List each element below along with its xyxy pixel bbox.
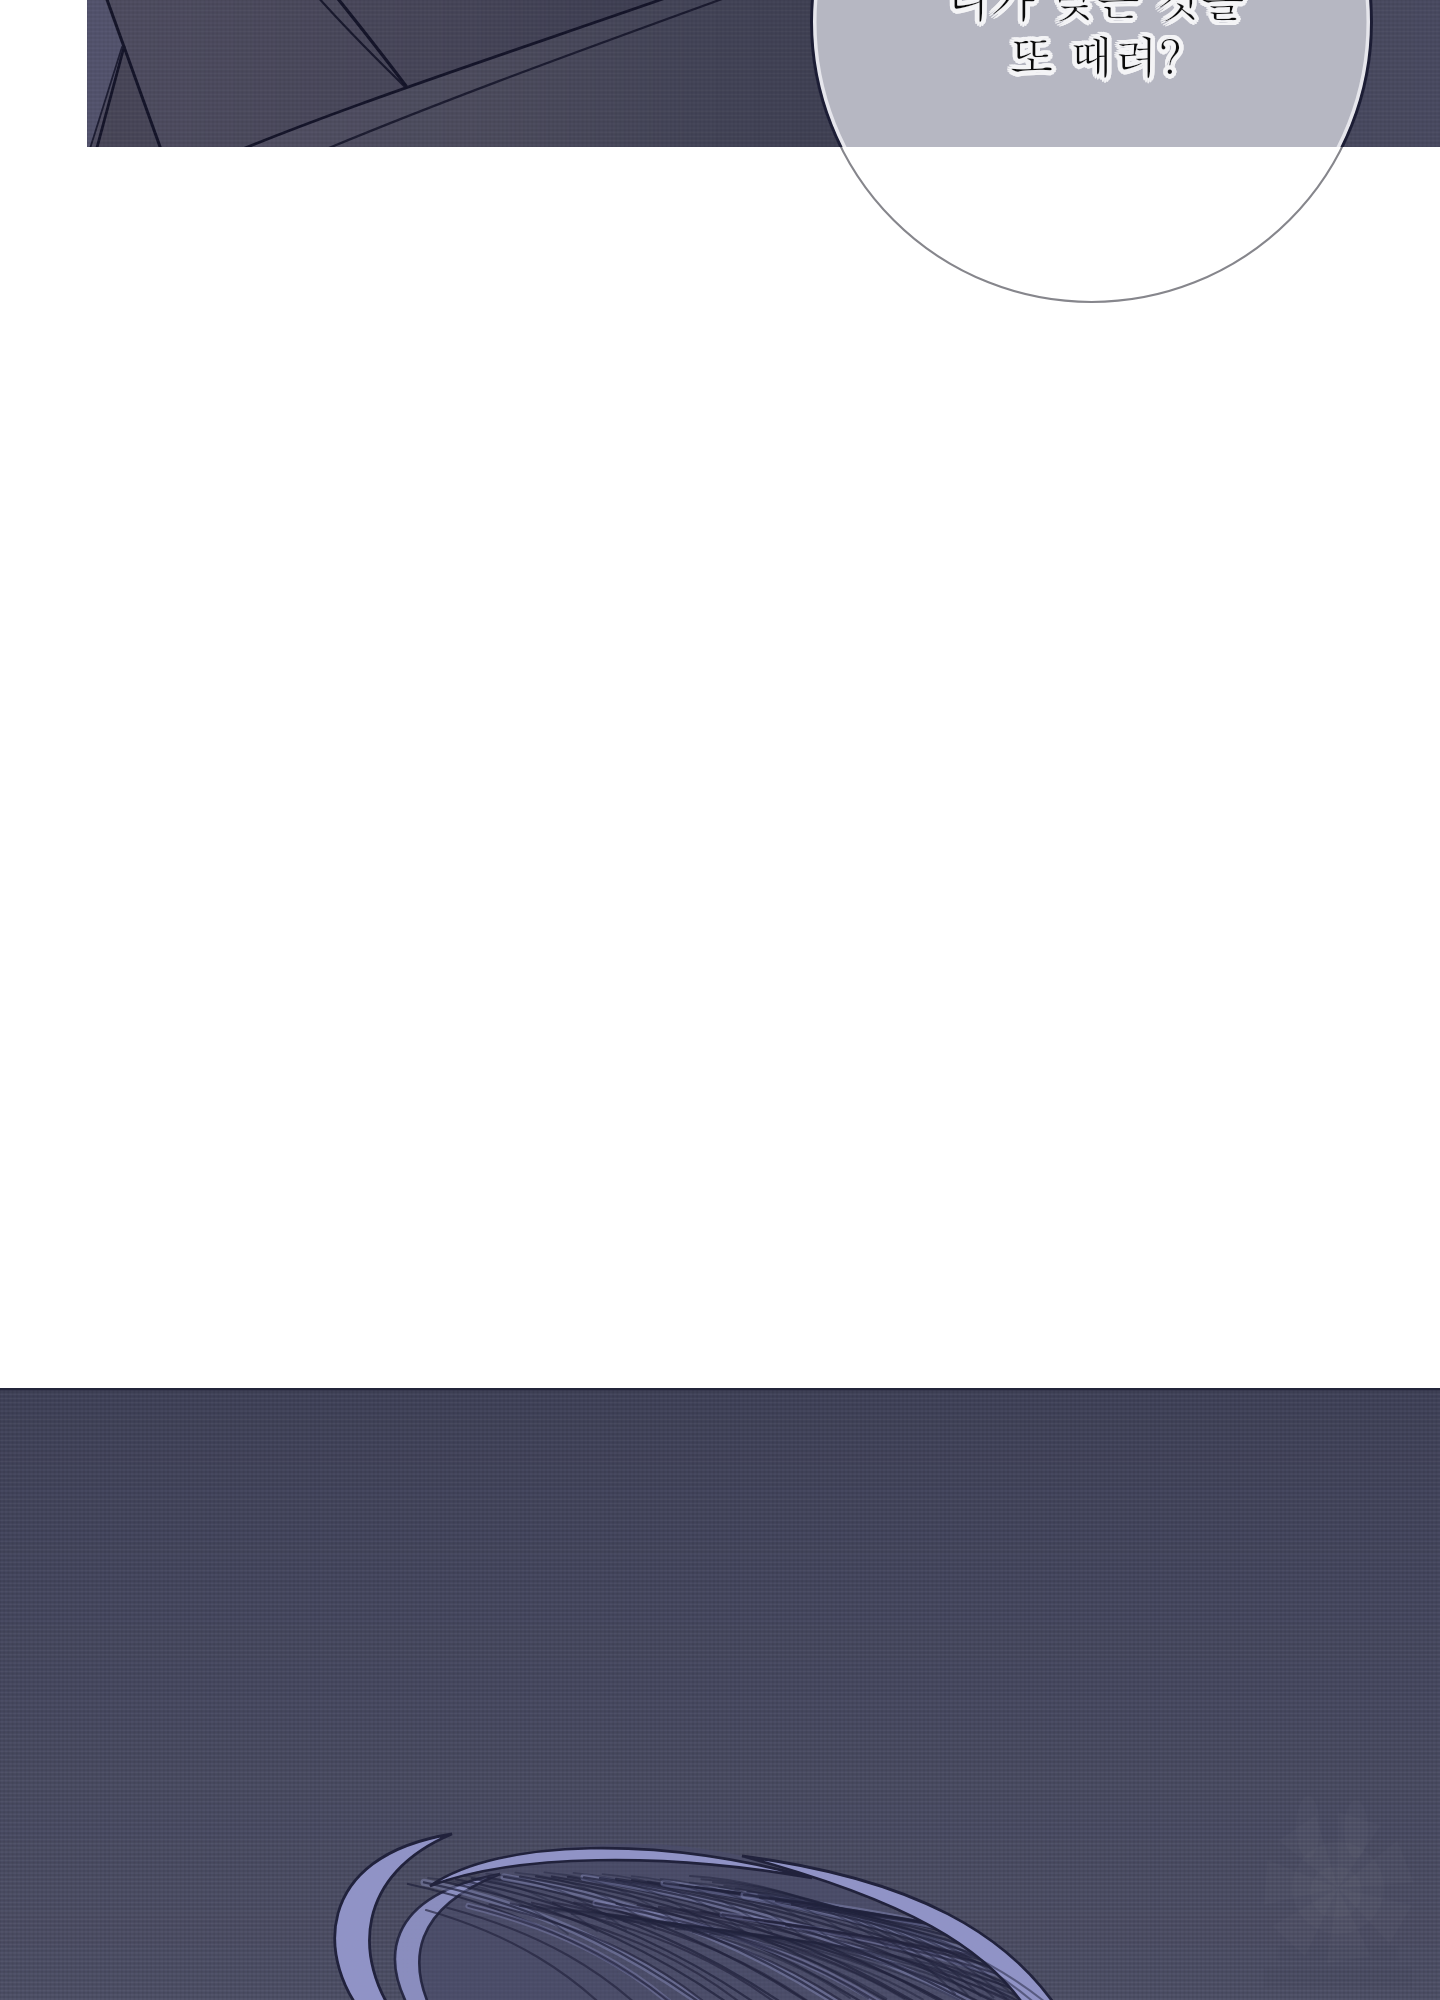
button[interactable]: Webtoon page, tap to show reader control… <box>0 0 1440 2000</box>
